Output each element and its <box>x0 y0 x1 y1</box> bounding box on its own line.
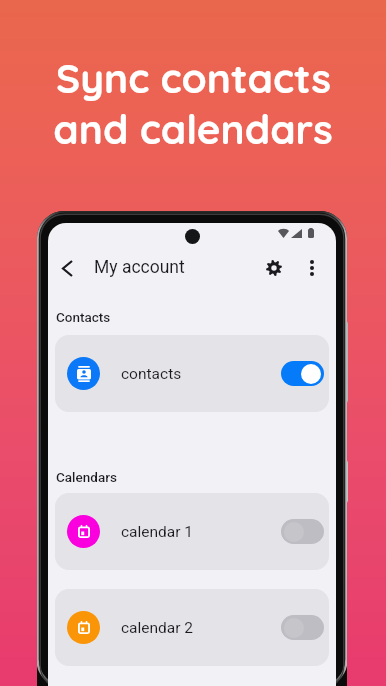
button[interactable]: calendar 2 <box>55 589 329 666</box>
button[interactable]: Off <box>281 519 324 544</box>
staticText: Calendars <box>56 469 117 485</box>
button[interactable]: More options <box>297 253 327 283</box>
staticText: calendar 1 <box>121 523 194 541</box>
button[interactable]: Off <box>281 615 324 640</box>
staticText: calendar 2 <box>121 619 194 637</box>
button[interactable]: Back <box>50 251 84 285</box>
staticText: Sync contacts <box>56 52 331 103</box>
button[interactable]: contacts <box>55 335 329 412</box>
staticText: contacts <box>121 365 182 383</box>
button[interactable]: On <box>281 361 324 386</box>
staticText: Contacts <box>56 309 111 325</box>
staticText: My account <box>94 257 185 278</box>
staticText: and calendars <box>53 103 333 154</box>
button[interactable]: Settings <box>257 251 291 285</box>
button[interactable]: calendar 1 <box>55 493 329 570</box>
